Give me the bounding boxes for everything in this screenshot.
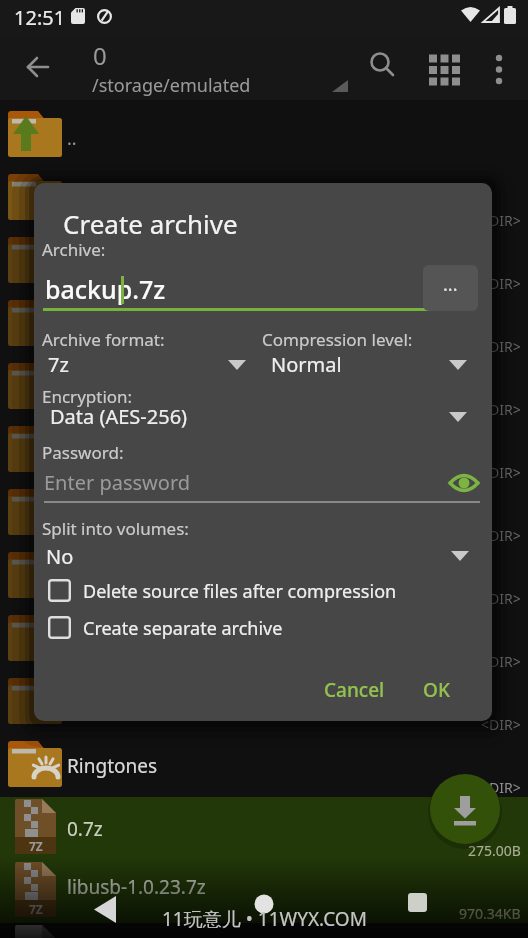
button[interactable]: [42, 400, 474, 430]
staticText: ..: [67, 126, 77, 151]
button[interactable]: [42, 573, 474, 607]
staticText: 7Z: [29, 901, 43, 917]
button[interactable]: [262, 348, 474, 378]
staticText: 0: [93, 39, 107, 72]
staticText: Password:: [42, 441, 124, 464]
staticText: No: [46, 543, 74, 570]
staticText: Compression level:: [262, 328, 413, 351]
button[interactable]: [0, 230, 528, 293]
staticText: OK: [423, 677, 450, 703]
staticText: <DIR>: [481, 715, 521, 732]
button[interactable]: [244, 884, 284, 924]
staticText: 11玩意儿 • 11WYX.COM: [162, 906, 367, 932]
button[interactable]: [448, 468, 484, 498]
button[interactable]: [0, 734, 528, 797]
button[interactable]: [0, 167, 528, 230]
button[interactable]: [363, 48, 399, 84]
staticText: <DIR>: [481, 526, 521, 543]
button[interactable]: [484, 50, 516, 86]
staticText: <DIR>: [481, 274, 521, 291]
button[interactable]: OK: [406, 672, 466, 708]
button[interactable]: [0, 419, 528, 482]
staticText: <DIR>: [481, 211, 521, 228]
staticText: <DIR>: [481, 589, 521, 606]
staticText: backup.7z: [45, 272, 166, 306]
staticText: Data (AES-256): [50, 403, 188, 430]
staticText: <DIR>: [481, 337, 521, 354]
button[interactable]: [430, 774, 500, 844]
staticText: 970.34KB: [459, 904, 521, 921]
button[interactable]: [42, 610, 474, 644]
button[interactable]: [0, 797, 528, 860]
staticText: <DIR>: [481, 463, 521, 480]
staticText: Create archive: [63, 206, 238, 241]
staticText: Normal: [271, 351, 342, 378]
button[interactable]: [0, 860, 528, 923]
staticText: Enter password: [44, 469, 191, 496]
staticText: 7z: [48, 351, 69, 378]
staticText: libusb-1.0.23.7z: [67, 874, 206, 900]
button[interactable]: [0, 356, 528, 419]
button[interactable]: [42, 348, 252, 378]
staticText: Archive:: [42, 238, 106, 261]
staticText: <DIR>: [481, 400, 521, 417]
button[interactable]: [42, 465, 474, 497]
staticText: 0.7z: [67, 816, 103, 842]
staticText: <DIR>: [481, 652, 521, 669]
button[interactable]: [0, 545, 528, 608]
staticText: ...: [443, 272, 458, 297]
button[interactable]: ...: [423, 265, 478, 311]
staticText: Cancel: [324, 677, 385, 703]
staticText: Delete source files after compression: [83, 579, 397, 604]
staticText: Create separate archive: [83, 616, 283, 641]
staticText: Split into volumes:: [42, 517, 189, 540]
staticText: 7Z: [29, 838, 43, 854]
button[interactable]: Cancel: [310, 672, 398, 708]
staticText: 275.00B: [468, 841, 521, 858]
staticText: /storage/emulated: [92, 73, 251, 98]
button[interactable]: [85, 885, 125, 925]
button[interactable]: [20, 50, 56, 84]
staticText: Encryption:: [42, 385, 133, 408]
button[interactable]: [0, 104, 528, 167]
staticText: 12:51: [14, 4, 66, 31]
button[interactable]: [397, 884, 437, 924]
button[interactable]: [42, 540, 474, 570]
button[interactable]: [0, 293, 528, 356]
staticText: <DIR>: [481, 778, 521, 795]
staticText: Ringtones: [67, 753, 158, 779]
button[interactable]: [0, 482, 528, 545]
button[interactable]: [427, 52, 463, 88]
staticText: Archive format:: [42, 328, 165, 351]
button[interactable]: [0, 608, 528, 671]
button[interactable]: [0, 671, 528, 734]
